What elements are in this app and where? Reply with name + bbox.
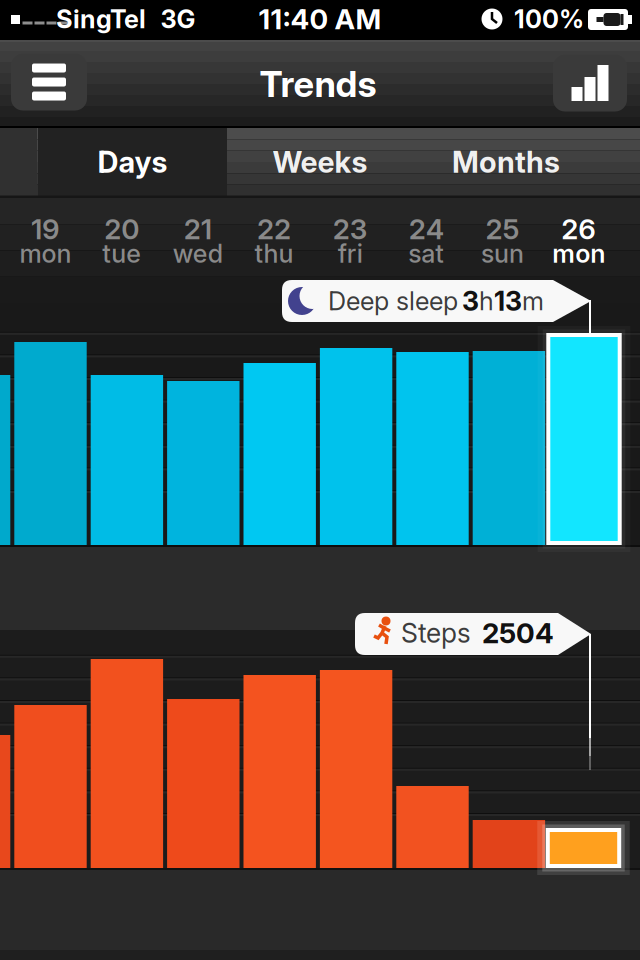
staticText: 23 [333,212,368,245]
staticText: thu [254,239,293,268]
button[interactable] [11,53,87,110]
staticText: h [479,286,494,316]
staticText: 3 [462,285,479,317]
staticText: fri [338,239,363,268]
staticText: Deep sleep [328,286,458,316]
button[interactable]: 23 [313,190,387,290]
staticText: Steps [401,617,471,649]
button[interactable]: 25 [465,190,539,290]
staticText: wed [173,239,223,268]
staticText: 2504 [482,616,554,649]
staticText: sat [408,239,444,268]
button[interactable]: 20 [85,190,159,290]
staticText: 13 [494,285,522,317]
button[interactable]: 19 [8,190,82,290]
staticText: 19 [31,212,60,245]
button[interactable]: Days [38,128,227,196]
button[interactable]: 24 [389,190,463,290]
staticText: 22 [257,212,291,245]
staticText: SingTel [56,4,146,34]
staticText: 11:40 AM [258,2,381,35]
staticText: Trends [259,63,376,105]
staticText: mon [552,239,605,268]
staticText: sun [481,239,524,268]
staticText: 25 [485,212,519,245]
button[interactable]: 26 [542,190,616,290]
staticText: tue [102,239,141,268]
staticText: 21 [184,212,212,245]
button[interactable] [553,54,627,111]
staticText: 24 [409,212,444,245]
button[interactable]: 21 [161,190,235,290]
button[interactable]: 22 [237,190,311,290]
staticText: 20 [104,212,139,245]
staticText: 100% [514,4,584,34]
staticText: mon [19,239,71,268]
staticText: Months [452,145,560,179]
staticText: Weeks [272,145,367,179]
staticText: 26 [561,212,596,245]
staticText: Days [97,145,167,179]
staticText: m [522,286,544,316]
button[interactable]: Weeks [230,128,410,196]
staticText: 3G [160,4,195,34]
button[interactable]: Months [416,128,596,196]
